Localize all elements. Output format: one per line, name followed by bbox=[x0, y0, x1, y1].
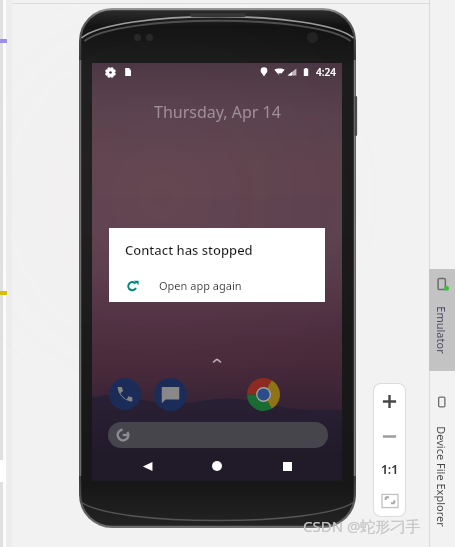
staticText: 4:24 bbox=[316, 65, 336, 79]
button[interactable]: Recent apps bbox=[273, 452, 301, 480]
button[interactable]: Search bbox=[108, 422, 328, 448]
button[interactable]: Device File Explorer bbox=[429, 389, 455, 539]
button[interactable]: Home bbox=[203, 452, 231, 480]
button[interactable]: Phone bbox=[109, 378, 141, 410]
staticText: 1:1 bbox=[381, 461, 399, 477]
button[interactable]: Messages bbox=[154, 378, 187, 411]
button[interactable]: Fit to screen bbox=[373, 485, 406, 517]
button[interactable]: Back bbox=[133, 452, 161, 480]
staticText: Device File Explorer bbox=[434, 426, 449, 527]
button[interactable]: Chrome bbox=[247, 378, 280, 411]
staticText: Emulator bbox=[434, 306, 449, 354]
button[interactable]: Open app again bbox=[109, 268, 325, 302]
other: All apps bbox=[210, 354, 224, 368]
staticText: Open app again bbox=[159, 278, 242, 293]
button[interactable]: Zoom out bbox=[373, 419, 406, 453]
staticText: CSDN @蛇形刁手 bbox=[303, 516, 421, 536]
button[interactable]: Zoom in bbox=[373, 383, 406, 419]
button[interactable]: Actual size bbox=[373, 453, 406, 485]
button[interactable]: Emulator bbox=[429, 269, 455, 371]
staticText: Contact has stopped bbox=[125, 241, 253, 259]
staticText: Thursday, Apr 14 bbox=[154, 101, 281, 123]
